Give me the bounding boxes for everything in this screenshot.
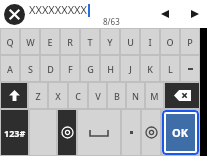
staticText: X: [55, 90, 61, 102]
button[interactable]: K: [141, 56, 159, 81]
button[interactable]: H: [101, 56, 119, 81]
button[interactable]: W: [21, 29, 39, 54]
staticText: O: [166, 36, 174, 48]
staticText: R: [67, 36, 73, 48]
button[interactable]: Z: [29, 83, 47, 108]
staticText: K: [147, 63, 153, 75]
staticText: Z: [35, 90, 41, 102]
button[interactable]: Symbols: [58, 110, 76, 155]
button[interactable]: D: [41, 56, 59, 81]
button[interactable]: B: [108, 83, 125, 108]
button[interactable]: M: [146, 83, 163, 108]
button[interactable]: Close: [3, 3, 25, 25]
button[interactable]: OK: [166, 114, 195, 151]
button[interactable]: S: [21, 56, 39, 81]
button[interactable]: [122, 110, 140, 155]
staticText: F: [68, 63, 73, 75]
button[interactable]: L: [161, 56, 179, 81]
button[interactable]: N: [127, 83, 144, 108]
staticText: J: [129, 63, 132, 75]
button[interactable]: X: [49, 83, 67, 108]
button[interactable]: Shift: [1, 83, 27, 108]
button[interactable]: [142, 110, 160, 155]
staticText: C: [75, 90, 81, 102]
button[interactable]: P: [181, 29, 199, 54]
button[interactable]: V: [89, 83, 106, 108]
staticText: H: [107, 63, 114, 75]
staticText: XXXXXXXXX: [29, 2, 88, 17]
staticText: E: [47, 36, 53, 48]
button[interactable]: Next: [185, 4, 205, 24]
staticText: Q: [6, 36, 14, 48]
staticText: M: [150, 90, 159, 102]
button[interactable]: A: [1, 56, 19, 81]
button[interactable]: J: [121, 56, 139, 81]
button[interactable]: Previous: [155, 4, 175, 24]
button[interactable]: I: [141, 29, 159, 54]
button[interactable]: C: [69, 83, 87, 108]
staticText: V: [95, 90, 101, 102]
staticText: A: [7, 63, 13, 75]
button[interactable]: T: [81, 29, 99, 54]
button[interactable]: R: [61, 29, 79, 54]
staticText: OK: [172, 125, 189, 140]
staticText: G: [87, 63, 94, 75]
button[interactable]: O: [161, 29, 179, 54]
staticText: L: [168, 63, 173, 75]
button[interactable]: 123#: [1, 110, 28, 155]
button[interactable]: Q: [1, 29, 19, 54]
button[interactable]: E: [41, 29, 59, 54]
staticText: T: [87, 36, 93, 48]
staticText: 123#: [4, 127, 26, 139]
button[interactable]: U: [121, 29, 139, 54]
button[interactable]: G: [81, 56, 99, 81]
button[interactable]: [181, 56, 199, 81]
button[interactable]: [78, 110, 120, 155]
staticText: 8/63: [103, 16, 120, 27]
staticText: B: [114, 90, 120, 102]
staticText: Y: [107, 36, 113, 48]
button[interactable]: Backspace: [165, 83, 199, 108]
staticText: I: [148, 36, 152, 48]
staticText: D: [47, 63, 54, 75]
button[interactable]: F: [61, 56, 79, 81]
staticText: N: [132, 90, 139, 102]
staticText: W: [26, 36, 35, 48]
staticText: P: [187, 36, 193, 48]
staticText: U: [127, 36, 134, 48]
staticText: S: [28, 63, 33, 75]
button[interactable]: Y: [101, 29, 119, 54]
